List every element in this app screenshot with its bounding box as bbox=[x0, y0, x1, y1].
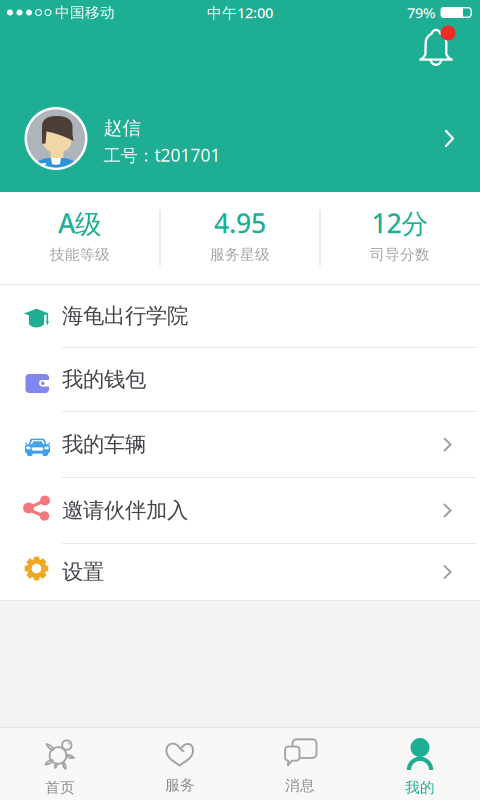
staticText: 首页 bbox=[45, 778, 75, 796]
staticText: 我的钱包 bbox=[62, 366, 146, 393]
button[interactable]: 服务 bbox=[120, 728, 240, 799]
staticText: 服务星级 bbox=[210, 245, 270, 263]
staticText: 我的车辆 bbox=[62, 431, 146, 458]
button[interactable]: 我的 bbox=[360, 728, 480, 799]
staticText: 79% bbox=[407, 3, 435, 22]
staticText: 技能等级 bbox=[50, 245, 110, 263]
button[interactable]: 首页 bbox=[0, 728, 120, 799]
staticText: 12分 bbox=[371, 205, 428, 241]
staticText: A级 bbox=[58, 205, 102, 241]
staticText: 赵信 bbox=[103, 116, 141, 139]
staticText: 工号：t201701 bbox=[103, 143, 220, 166]
button[interactable]: 海龟出行学院 bbox=[0, 285, 480, 347]
button[interactable]: 消息 bbox=[240, 728, 360, 799]
staticText: 我的 bbox=[405, 778, 435, 796]
staticText: 中午12:00 bbox=[207, 3, 273, 22]
button[interactable]: 我的车辆 bbox=[0, 412, 480, 477]
button[interactable]: 邀请伙伴加入 bbox=[0, 478, 480, 543]
staticText: 中国移动 bbox=[51, 3, 115, 21]
staticText: 4.95 bbox=[214, 205, 266, 241]
button[interactable]: 设置 bbox=[0, 544, 480, 600]
staticText: 邀请伙伴加入 bbox=[62, 497, 188, 524]
button[interactable]: Notifications bbox=[413, 24, 459, 70]
staticText: 消息 bbox=[285, 776, 315, 794]
staticText: 司导分数 bbox=[370, 245, 430, 263]
staticText: 设置 bbox=[62, 559, 104, 585]
staticText: 服务 bbox=[165, 776, 195, 794]
staticText: 海龟出行学院 bbox=[62, 303, 188, 329]
button[interactable]: 赵信 bbox=[22, 107, 458, 170]
button[interactable]: 我的钱包 bbox=[0, 348, 480, 411]
